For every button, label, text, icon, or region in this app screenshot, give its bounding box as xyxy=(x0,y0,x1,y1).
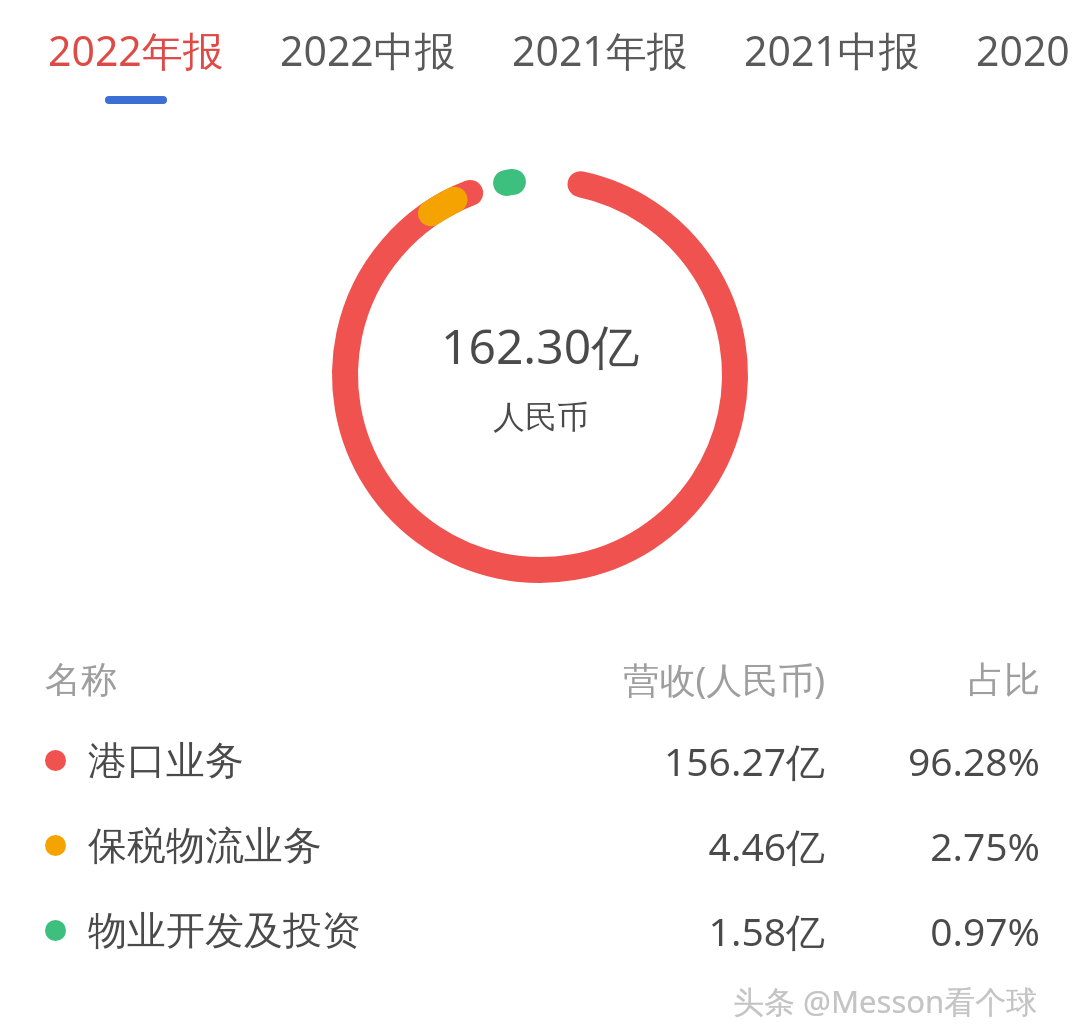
button[interactable]: 2022年报 xyxy=(48,0,224,104)
staticText: 2021年报 xyxy=(512,22,688,78)
button[interactable]: 保税物流业务 xyxy=(0,803,1080,888)
button[interactable]: 2021中报 xyxy=(744,0,920,96)
staticText: 96.28% xyxy=(825,734,1040,787)
staticText: 1.58亿 xyxy=(530,904,825,957)
staticText: 港口业务 xyxy=(88,736,244,785)
staticText: 2021中报 xyxy=(744,22,920,78)
staticText: 2.75% xyxy=(825,819,1040,872)
button[interactable]: 2021年报 xyxy=(512,0,688,96)
button[interactable]: 2020 xyxy=(976,0,1070,96)
other: Revenue breakdown chart xyxy=(320,155,760,595)
staticText: 0.97% xyxy=(825,904,1040,957)
staticText: 162.30亿 xyxy=(441,313,640,379)
staticText: 物业开发及投资 xyxy=(88,906,361,955)
staticText: 占比 xyxy=(825,657,1040,702)
button[interactable]: 物业开发及投资 xyxy=(0,888,1080,973)
staticText: 2022中报 xyxy=(280,22,456,78)
staticText: 名称 xyxy=(45,657,117,702)
staticText: 保税物流业务 xyxy=(88,821,322,870)
staticText: 4.46亿 xyxy=(530,819,825,872)
staticText: 2022年报 xyxy=(48,22,224,78)
button[interactable]: 2022中报 xyxy=(280,0,456,96)
staticText: 头条 @Messon看个球 xyxy=(733,980,1038,1022)
staticText: 营收(人民币) xyxy=(530,655,825,704)
staticText: 人民币 xyxy=(493,397,589,437)
staticText: 156.27亿 xyxy=(530,734,825,787)
staticText: 2020 xyxy=(976,22,1070,78)
button[interactable]: 港口业务 xyxy=(0,718,1080,803)
